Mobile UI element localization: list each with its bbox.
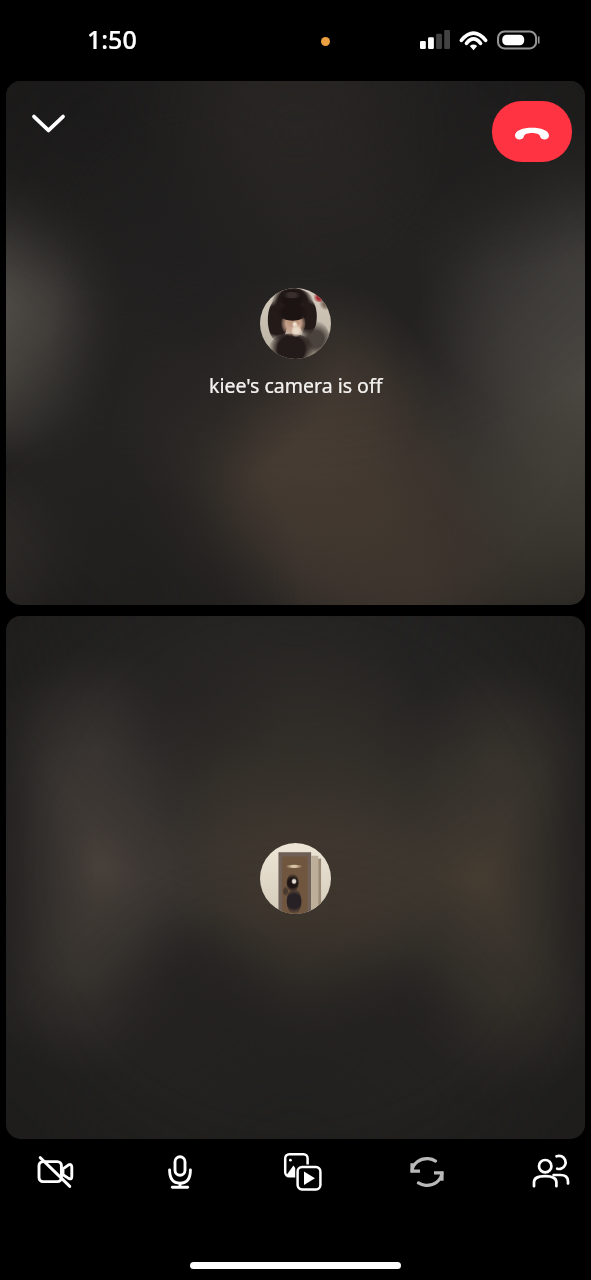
button[interactable]: Add people [523, 1139, 579, 1209]
staticText: kiee's camera is off [209, 372, 383, 399]
button[interactable]: Flip camera [399, 1139, 455, 1209]
button[interactable]: End call [492, 101, 572, 162]
button[interactable]: Mute microphone [152, 1139, 208, 1209]
button[interactable]: Minimize [22, 97, 74, 149]
button[interactable]: Share media [275, 1139, 331, 1209]
staticText: 1:50 [87, 22, 137, 56]
button[interactable]: Turn camera on [27, 1139, 83, 1209]
